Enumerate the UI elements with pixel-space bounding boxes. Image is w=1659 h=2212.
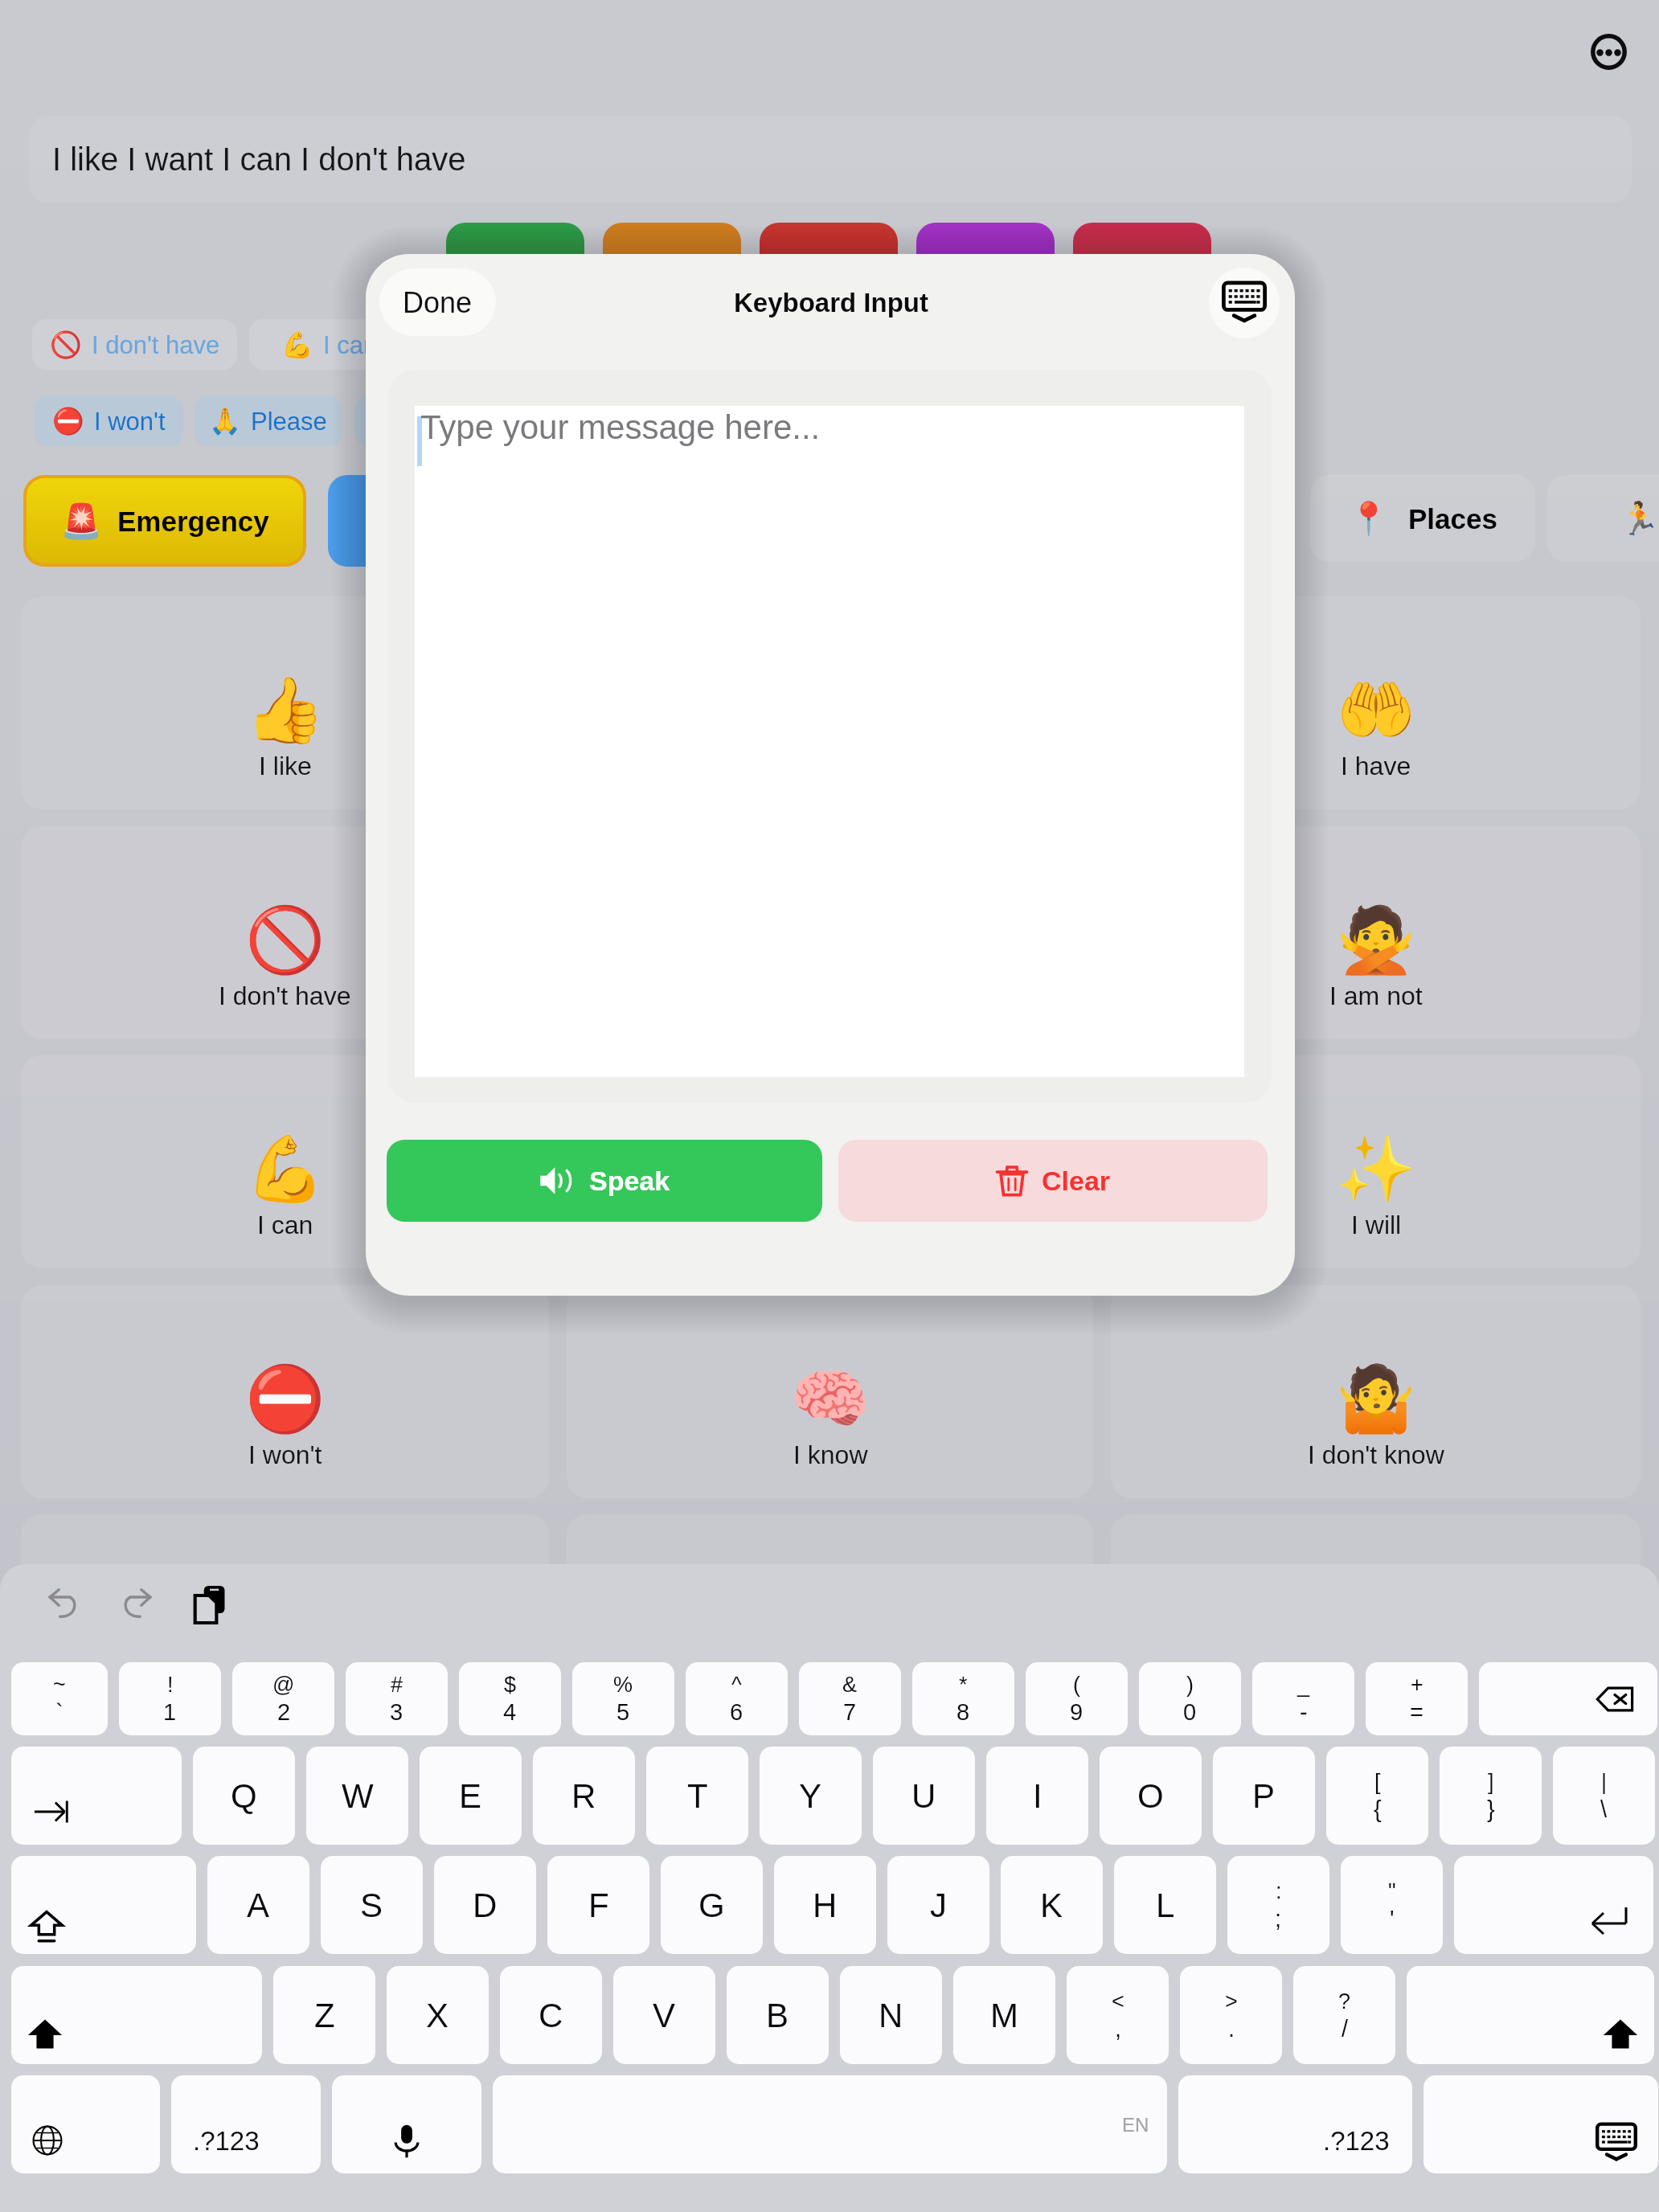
button[interactable]: Q — [193, 1747, 295, 1845]
button[interactable]: # — [346, 1662, 448, 1735]
button[interactable]: + — [1366, 1662, 1468, 1735]
button[interactable]: Hide keyboard — [1209, 268, 1280, 338]
button[interactable] — [567, 1514, 1093, 1727]
button[interactable]: " — [1341, 1856, 1443, 1954]
staticText: D — [473, 1886, 498, 1924]
button[interactable]: ( — [1026, 1662, 1128, 1735]
button[interactable]: Redo — [114, 1581, 159, 1626]
button[interactable]: Return — [1454, 1856, 1653, 1954]
button[interactable]: K — [1001, 1856, 1103, 1954]
button[interactable]: Dismiss keyboard — [1423, 2075, 1658, 2173]
button[interactable] — [760, 223, 898, 306]
button[interactable]: | — [1553, 1747, 1655, 1845]
button[interactable]: 🚫 — [21, 826, 549, 1039]
button[interactable]: 🚨 — [27, 478, 303, 563]
button[interactable]: Undo — [41, 1581, 86, 1626]
button[interactable] — [1111, 1514, 1641, 1727]
button[interactable]: 🤷 — [1111, 1285, 1641, 1498]
button[interactable]: I — [986, 1747, 1088, 1845]
button[interactable]: T — [646, 1747, 748, 1845]
button[interactable]: % — [572, 1662, 674, 1735]
button[interactable]: F — [547, 1856, 649, 1954]
button[interactable]: 🤲 — [1111, 596, 1641, 809]
button[interactable] — [1073, 223, 1211, 306]
button[interactable]: V — [613, 1966, 715, 2064]
button[interactable]: ] — [1440, 1747, 1542, 1845]
button[interactable]: Shift — [11, 1966, 262, 2064]
button[interactable] — [916, 223, 1055, 306]
button[interactable] — [567, 1055, 1093, 1268]
button[interactable] — [446, 223, 584, 306]
button[interactable]: 🧠 — [567, 1285, 1093, 1498]
button[interactable]: > — [1180, 1966, 1282, 2064]
button[interactable] — [328, 475, 521, 567]
button[interactable]: ^ — [686, 1662, 788, 1735]
button[interactable]: Tab — [11, 1747, 182, 1845]
button[interactable] — [21, 1514, 549, 1727]
button[interactable]: ) — [1139, 1662, 1241, 1735]
button[interactable]: ⛔ — [34, 395, 183, 446]
staticText: < — [1112, 1989, 1124, 2013]
button[interactable]: Y — [760, 1747, 862, 1845]
button[interactable]: $ — [459, 1662, 561, 1735]
button[interactable]: Type your message here... — [415, 406, 1244, 1077]
button[interactable]: 🙅 — [1111, 826, 1641, 1039]
button[interactable]: Caps lock — [11, 1856, 196, 1954]
button[interactable] — [603, 223, 741, 306]
button[interactable]: Change language — [11, 2075, 160, 2173]
button[interactable]: O — [1100, 1747, 1202, 1845]
button[interactable]: More options — [1572, 15, 1645, 88]
button[interactable]: Clear — [838, 1140, 1268, 1222]
button[interactable]: C — [500, 1966, 602, 2064]
button[interactable]: 💪 — [249, 319, 410, 370]
button[interactable]: Paste — [188, 1582, 233, 1627]
button[interactable]: L — [1114, 1856, 1216, 1954]
button[interactable]: Space — [493, 2075, 1167, 2173]
button[interactable]: M — [953, 1966, 1055, 2064]
button[interactable]: 💪 — [21, 1055, 549, 1268]
button[interactable]: & — [799, 1662, 901, 1735]
button[interactable]: 🏃 — [1547, 475, 1659, 562]
button[interactable]: H — [774, 1856, 876, 1954]
button[interactable]: Backspace — [1479, 1662, 1657, 1735]
button[interactable]: 🚫 — [32, 319, 237, 370]
button[interactable]: Speak — [387, 1140, 822, 1222]
button[interactable]: ~ — [11, 1662, 108, 1735]
button[interactable]: 📍 — [1310, 475, 1535, 562]
button[interactable]: E — [420, 1747, 522, 1845]
button[interactable]: Z — [273, 1966, 375, 2064]
button[interactable]: ? — [1293, 1966, 1395, 2064]
button[interactable]: : — [1227, 1856, 1329, 1954]
button[interactable]: ✨ — [1111, 1055, 1641, 1268]
button[interactable]: J — [887, 1856, 989, 1954]
button[interactable]: * — [912, 1662, 1014, 1735]
button[interactable]: S — [321, 1856, 423, 1954]
button[interactable]: 👍 — [21, 596, 549, 809]
button[interactable]: R — [533, 1747, 635, 1845]
button[interactable]: 🙏 — [194, 395, 342, 446]
button[interactable]: [ — [1326, 1747, 1428, 1845]
button[interactable]: P — [1213, 1747, 1315, 1845]
button[interactable]: Dictate — [332, 2075, 481, 2173]
button[interactable]: .?123 — [1178, 2075, 1412, 2173]
button[interactable]: ⛔ — [21, 1285, 549, 1498]
button[interactable]: U — [873, 1747, 975, 1845]
button[interactable]: X — [387, 1966, 489, 2064]
button[interactable]: < — [1067, 1966, 1169, 2064]
button[interactable]: .?123 — [171, 2075, 321, 2173]
button[interactable]: I like I want I can I don't have — [29, 116, 1632, 203]
button[interactable]: N — [840, 1966, 942, 2064]
button[interactable]: B — [727, 1966, 829, 2064]
button[interactable]: W — [306, 1747, 408, 1845]
button[interactable]: G — [661, 1856, 763, 1954]
button[interactable]: Shift — [1407, 1966, 1654, 2064]
button[interactable]: @ — [232, 1662, 334, 1735]
button[interactable] — [354, 395, 503, 446]
button[interactable]: A — [207, 1856, 309, 1954]
button[interactable]: _ — [1252, 1662, 1354, 1735]
button[interactable]: Done — [379, 268, 496, 336]
button[interactable]: D — [434, 1856, 536, 1954]
button[interactable]: ! — [119, 1662, 221, 1735]
